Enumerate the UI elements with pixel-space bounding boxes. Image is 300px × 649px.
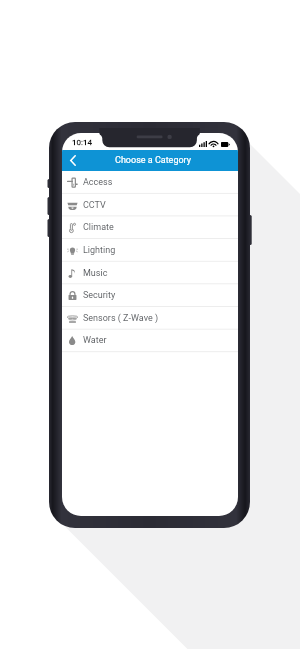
staticText: Access	[83, 177, 113, 188]
staticText: Music	[83, 268, 108, 279]
staticText: 10:14	[72, 138, 92, 147]
button[interactable]: Water	[62, 329, 238, 352]
staticText: Water	[83, 335, 107, 346]
button[interactable]: Security	[62, 284, 238, 307]
button[interactable]: Sensors ( Z-Wave )	[62, 307, 238, 330]
staticText: Choose a Category	[115, 155, 191, 166]
button[interactable]: Music	[62, 262, 238, 285]
button[interactable]: Climate	[62, 216, 238, 239]
staticText: CCTV	[83, 200, 106, 211]
staticText: Security	[83, 290, 116, 301]
button[interactable]: CCTV	[62, 194, 238, 217]
staticText: Climate	[83, 222, 114, 233]
button[interactable]: Access	[62, 171, 238, 194]
button[interactable]: Lighting	[62, 239, 238, 262]
staticText: Lighting	[83, 245, 116, 256]
staticText: Sensors ( Z-Wave )	[83, 313, 159, 324]
button[interactable]: Back	[62, 150, 84, 171]
